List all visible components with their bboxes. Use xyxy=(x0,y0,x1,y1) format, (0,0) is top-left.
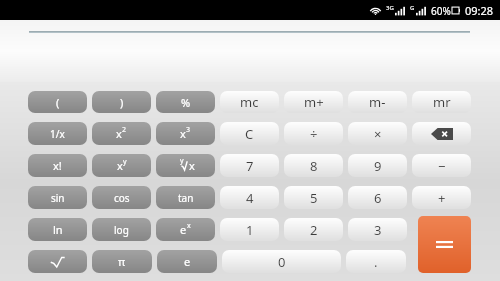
staticText: 3 xyxy=(374,221,382,239)
staticText: log xyxy=(114,223,129,237)
staticText: e xyxy=(184,254,191,269)
staticText: 9 xyxy=(374,157,382,175)
button[interactable]: ÷ xyxy=(284,122,343,145)
button[interactable]: m- xyxy=(348,91,407,113)
button[interactable]: 4 xyxy=(220,186,279,209)
staticText: e xyxy=(180,222,187,237)
button[interactable]: + xyxy=(412,186,471,209)
button[interactable]: Square root xyxy=(28,250,87,273)
staticText: x! xyxy=(53,158,62,173)
button[interactable]: tan xyxy=(156,186,215,209)
staticText: − xyxy=(438,157,446,175)
staticText: tan xyxy=(178,191,194,205)
staticText: 5 xyxy=(310,189,318,207)
button[interactable]: × xyxy=(348,122,407,145)
button[interactable]: x xyxy=(92,122,151,145)
staticText: % xyxy=(181,95,191,110)
staticText: G xyxy=(410,4,415,12)
staticText: + xyxy=(438,189,446,207)
staticText: 1/x xyxy=(50,127,65,141)
button[interactable]: . xyxy=(346,250,406,273)
staticText: ( xyxy=(56,95,60,110)
button[interactable]: 9 xyxy=(348,154,407,177)
staticText: 2 xyxy=(310,221,318,239)
staticText: . xyxy=(374,253,378,271)
staticText: x xyxy=(116,126,122,141)
button[interactable]: 5 xyxy=(284,186,343,209)
other: Backspace xyxy=(431,128,453,140)
button[interactable]: Equals xyxy=(418,216,471,273)
staticText: x xyxy=(189,158,195,173)
staticText: x xyxy=(180,126,186,141)
other: Square root xyxy=(50,256,65,268)
button[interactable]: sin xyxy=(28,186,87,209)
staticText: ) xyxy=(120,95,124,110)
staticText: m+ xyxy=(304,93,324,111)
button[interactable]: x! xyxy=(28,154,87,177)
staticText: ln xyxy=(53,222,63,237)
staticText: 3 xyxy=(186,125,191,135)
staticText: x xyxy=(117,158,123,173)
button[interactable]: − xyxy=(412,154,471,177)
staticText: 3G xyxy=(386,4,394,12)
button[interactable]: Backspace xyxy=(412,122,471,145)
staticText: y xyxy=(180,156,184,166)
button[interactable]: e xyxy=(156,218,215,241)
staticText: 2 xyxy=(122,125,127,135)
button[interactable]: ln xyxy=(28,218,87,241)
button[interactable]: % xyxy=(156,91,215,113)
staticText: y xyxy=(123,157,127,167)
staticText: π xyxy=(118,254,126,269)
staticText: 6 xyxy=(374,189,382,207)
button[interactable]: x xyxy=(156,122,215,145)
button[interactable]: y xyxy=(156,154,215,177)
button[interactable]: e xyxy=(157,250,217,273)
button[interactable]: C xyxy=(220,122,279,145)
staticText: mr xyxy=(433,93,451,111)
button[interactable]: 1 xyxy=(220,218,279,241)
staticText: ÷ xyxy=(310,125,318,143)
staticText: x xyxy=(187,221,191,231)
staticText: 1 xyxy=(246,221,254,239)
staticText: cos xyxy=(114,191,130,205)
button[interactable]: ) xyxy=(92,91,151,113)
button[interactable]: π xyxy=(92,250,152,273)
button[interactable]: 6 xyxy=(348,186,407,209)
staticText: 60% xyxy=(431,4,451,18)
button[interactable]: 3 xyxy=(348,218,407,241)
button[interactable]: 1/x xyxy=(28,122,87,145)
staticText: × xyxy=(374,125,382,143)
staticText: mc xyxy=(240,93,259,111)
button[interactable]: log xyxy=(92,218,151,241)
button[interactable]: mc xyxy=(220,91,279,113)
button[interactable]: 2 xyxy=(284,218,343,241)
button[interactable]: 0 xyxy=(222,250,341,273)
button[interactable]: x xyxy=(92,154,151,177)
button[interactable]: ( xyxy=(28,91,87,113)
staticText: m- xyxy=(369,93,386,111)
staticText: C xyxy=(245,125,254,143)
button[interactable]: mr xyxy=(412,91,471,113)
button[interactable]: 8 xyxy=(284,154,343,177)
staticText: 4 xyxy=(246,189,254,207)
staticText: 0 xyxy=(278,253,286,271)
button[interactable]: m+ xyxy=(284,91,343,113)
button[interactable]: 7 xyxy=(220,154,279,177)
staticText: 7 xyxy=(246,157,254,175)
staticText: 09:28 xyxy=(465,3,494,18)
button[interactable]: cos xyxy=(92,186,151,209)
staticText: 8 xyxy=(310,157,318,175)
staticText: sin xyxy=(51,191,65,205)
